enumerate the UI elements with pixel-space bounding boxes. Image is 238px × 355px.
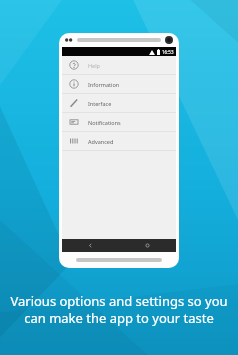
staticText: Notifications	[88, 119, 121, 126]
staticText: Help	[88, 62, 100, 69]
button[interactable]: Information	[62, 75, 176, 93]
button[interactable]: Help	[62, 56, 176, 74]
staticText: 16:53	[162, 49, 174, 55]
button[interactable]: Home	[119, 239, 176, 252]
staticText: Advanced	[88, 138, 114, 145]
button[interactable]: Interface	[62, 94, 176, 112]
staticText: Information	[88, 81, 120, 88]
staticText: Interface	[88, 100, 112, 107]
button[interactable]: Advanced	[62, 132, 176, 150]
staticText: Various options and settings so you can …	[8, 292, 230, 327]
button[interactable]: Back	[62, 239, 119, 252]
button[interactable]: Notifications	[62, 113, 176, 131]
